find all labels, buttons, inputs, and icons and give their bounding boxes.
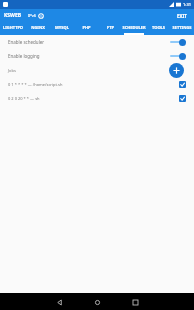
staticText: PHP xyxy=(82,25,91,30)
staticText: 1:31 xyxy=(183,2,191,7)
button[interactable]: SCHEDULER xyxy=(122,22,146,35)
button[interactable]: FTP xyxy=(98,22,122,35)
staticText: SCHEDULER xyxy=(122,25,146,30)
button[interactable]: LIGHTTPD xyxy=(0,22,25,35)
staticText: TOOLS xyxy=(152,25,165,30)
button[interactable]: Home xyxy=(89,294,105,310)
staticText: EXIT xyxy=(177,13,187,19)
staticText: Enable scheduler xyxy=(8,39,45,45)
button[interactable]: Network settings xyxy=(38,13,44,19)
button[interactable]: MYSQL xyxy=(50,22,74,35)
button[interactable]: NGINX xyxy=(25,22,50,35)
button[interactable]: PHP xyxy=(74,22,98,35)
button[interactable]: Enabled xyxy=(179,81,186,88)
button[interactable]: Back xyxy=(51,294,67,310)
staticText: 0 2 0 20 * * — sh xyxy=(8,96,40,101)
button[interactable]: EXIT xyxy=(175,12,189,20)
button[interactable]: 0 2 0 20 * * — sh xyxy=(0,91,194,105)
button[interactable]: Recent apps xyxy=(127,294,143,310)
button[interactable]: Enable logging xyxy=(0,49,194,63)
staticText: SETTINGS xyxy=(172,25,192,30)
button[interactable]: SETTINGS xyxy=(170,22,194,35)
button[interactable]: 0 1 * * * * — /home/script.sh xyxy=(0,77,194,91)
staticText: 0 1 * * * * — /home/script.sh xyxy=(8,82,63,87)
staticText: IPv6 xyxy=(28,13,37,18)
staticText: KSWEB xyxy=(4,12,22,19)
button[interactable]: Enable scheduler xyxy=(0,35,194,49)
staticText: Jobs xyxy=(8,68,16,73)
staticText: FTP xyxy=(107,25,114,30)
button[interactable]: Enabled xyxy=(179,95,186,102)
staticText: MYSQL xyxy=(55,25,69,30)
staticText: NGINX xyxy=(31,25,45,30)
staticText: Enable logging xyxy=(8,53,40,59)
button[interactable]: Add job xyxy=(169,63,184,78)
staticText: LIGHTTPD xyxy=(3,25,23,30)
button[interactable]: TOOLS xyxy=(146,22,170,35)
